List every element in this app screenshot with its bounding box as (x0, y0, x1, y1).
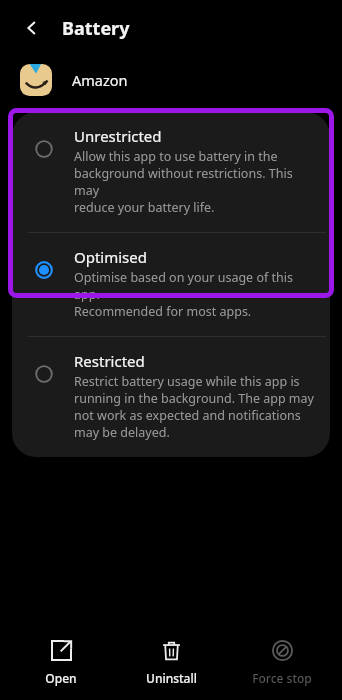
staticText: Allow this app to use battery in the bac… (74, 148, 318, 216)
staticText: Optimise based on your usage of this app… (74, 269, 318, 320)
button[interactable]: Restricted (12, 337, 330, 457)
staticText: Force stop (252, 670, 312, 686)
staticText: Unrestricted (74, 126, 162, 146)
staticText: Uninstall (146, 670, 197, 686)
button[interactable]: Force stop (232, 634, 332, 692)
staticText: Open (45, 670, 77, 686)
button[interactable]: Uninstall (121, 634, 221, 692)
button[interactable]: Back (18, 14, 46, 42)
button[interactable]: Optimised (12, 233, 330, 336)
other: Uninstall (161, 640, 182, 661)
staticText: Optimised (74, 247, 147, 267)
other: Open (51, 640, 72, 661)
staticText: Restrict battery usage while this app is… (74, 373, 314, 441)
button[interactable]: Unrestricted (12, 112, 330, 232)
staticText: Amazon (72, 70, 128, 90)
staticText: Battery (62, 16, 130, 41)
button[interactable]: Open (11, 634, 111, 692)
other: Force stop (272, 640, 293, 661)
staticText: Restricted (74, 351, 145, 371)
